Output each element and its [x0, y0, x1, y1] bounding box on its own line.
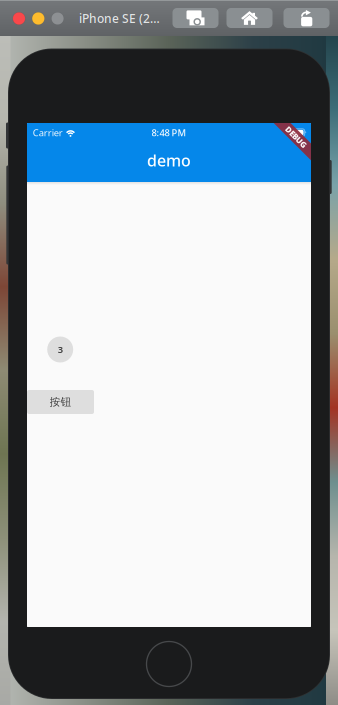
staticText: 8:48 PM — [151, 126, 186, 139]
staticText: demo — [147, 150, 191, 171]
button[interactable]: Rotate — [283, 8, 329, 28]
button[interactable]: Screenshot — [172, 8, 218, 28]
staticText: DEBUG — [282, 133, 309, 143]
staticText: Carrier — [33, 126, 63, 139]
staticText: 3 — [58, 343, 63, 356]
button[interactable]: Home — [226, 8, 272, 28]
button[interactable]: Zoom — [51, 12, 64, 25]
button[interactable]: Close — [13, 12, 25, 25]
staticText: 按钮 — [49, 395, 71, 408]
button[interactable]: 按钮 — [27, 390, 94, 414]
button[interactable]: Minimize — [32, 12, 44, 25]
staticText: iPhone SE (2… — [79, 10, 160, 26]
